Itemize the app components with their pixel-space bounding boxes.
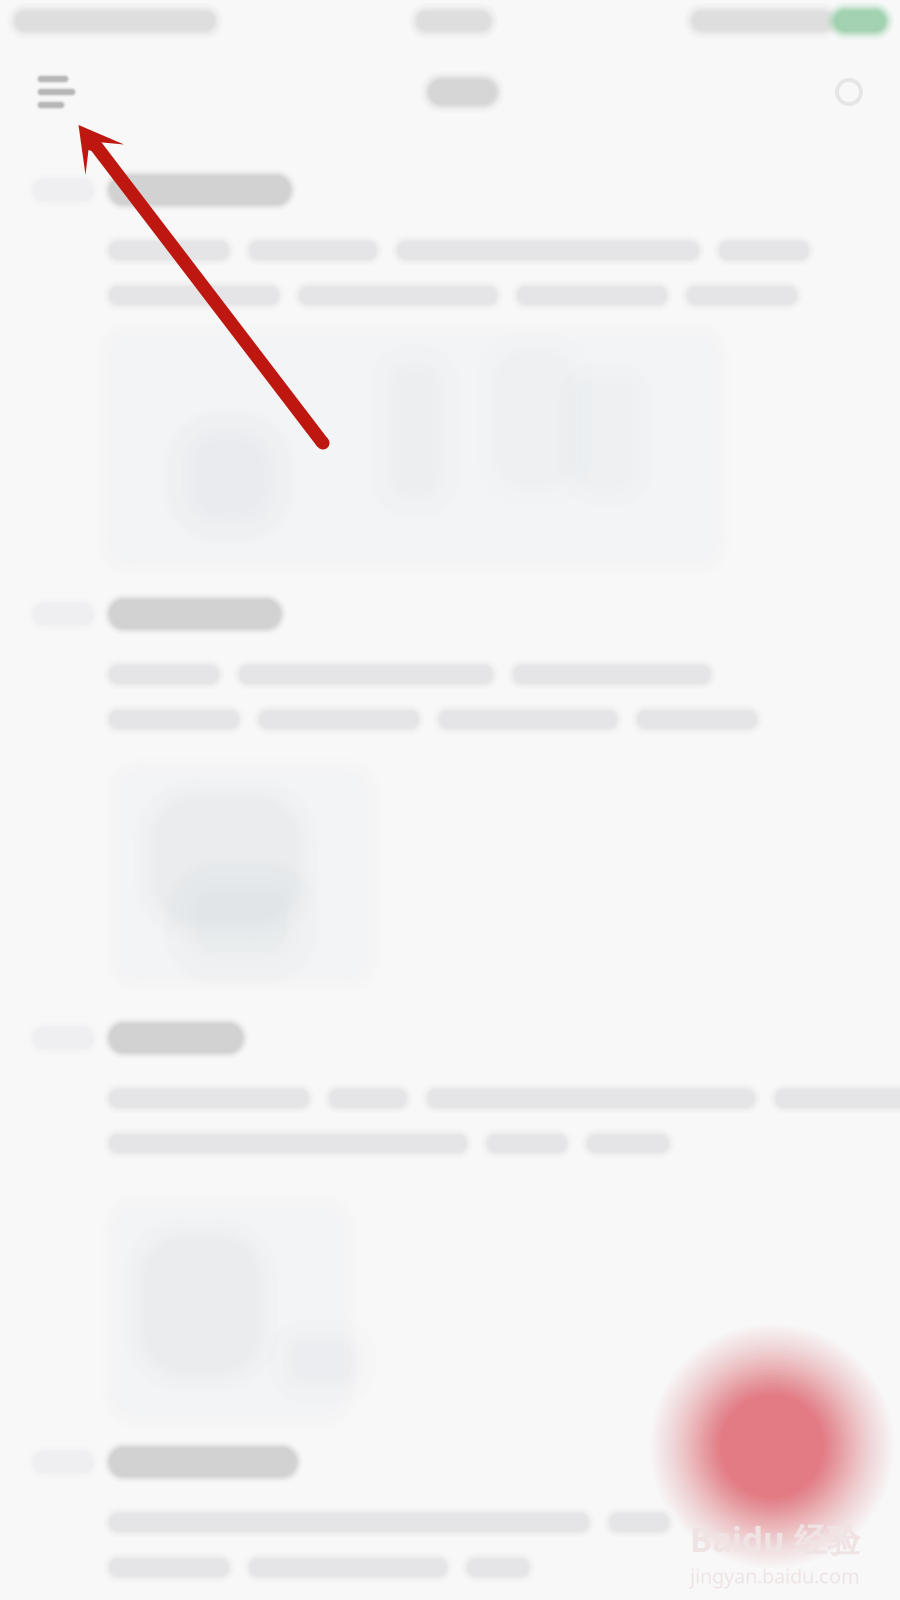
button[interactable]: Search bbox=[812, 61, 886, 123]
staticText: jingyan.baidu.com bbox=[690, 1562, 860, 1589]
button[interactable]: Menu bbox=[39, 61, 113, 123]
staticText: Baidu 经验 bbox=[690, 1517, 860, 1561]
